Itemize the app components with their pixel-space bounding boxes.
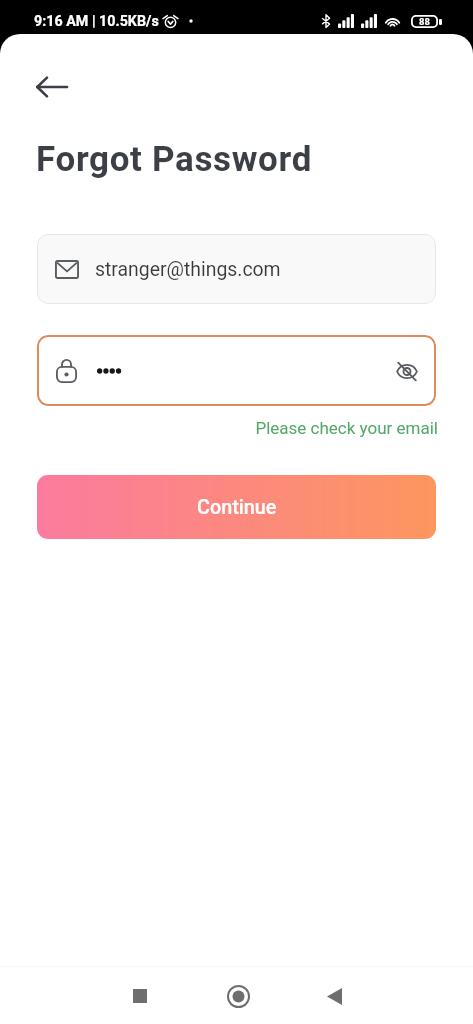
button[interactable]: Hide password (385, 349, 429, 393)
button[interactable]: Recent apps (114, 970, 166, 1022)
button[interactable]: Back (308, 970, 360, 1022)
staticText: Continue (197, 496, 277, 519)
staticText: Forgot Password (36, 139, 313, 180)
button[interactable]: Back (28, 63, 76, 111)
button[interactable]: stranger@things.com (37, 234, 436, 304)
button[interactable]: Continue (37, 475, 436, 539)
staticText: 9:16 AM | 10.5KB/s (34, 13, 159, 30)
staticText: Please check your email (0, 418, 438, 438)
staticText: stranger@things.com (95, 258, 281, 281)
button[interactable]: Home (212, 970, 264, 1022)
staticText: 88 (419, 16, 430, 27)
button[interactable]: Hide password (37, 335, 436, 406)
